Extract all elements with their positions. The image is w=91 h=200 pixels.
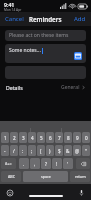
button[interactable]: #+= (1, 158, 16, 169)
staticText: space (41, 174, 51, 179)
button[interactable]: space (23, 171, 68, 182)
staticText: ( (40, 148, 42, 154)
staticText: $ (58, 148, 61, 154)
button[interactable]: Emoji keyboard (6, 189, 13, 196)
button[interactable]: Backspace (76, 158, 90, 169)
staticText: " (85, 148, 87, 154)
button[interactable]: ( (37, 145, 45, 156)
staticText: : (22, 148, 24, 154)
staticText: / (13, 148, 15, 154)
button[interactable]: 6 (46, 132, 54, 143)
staticText: Please act on these items (9, 32, 69, 39)
button[interactable]: : (19, 145, 27, 156)
staticText: ; (31, 148, 33, 154)
button[interactable]: & (64, 145, 72, 156)
button[interactable]: Details (5, 82, 86, 93)
button[interactable]: Add (69, 12, 91, 26)
staticText: Reminders (29, 15, 62, 23)
staticText: Cancel (5, 15, 24, 23)
staticText: ! (56, 161, 58, 167)
button[interactable]: 3 (19, 132, 27, 143)
staticText: Mon 14 Apr (4, 8, 22, 12)
staticText: 2 (13, 135, 16, 141)
staticText: ABC (8, 174, 15, 179)
button[interactable]: Please act on these items (5, 30, 86, 41)
button[interactable]: 8 (64, 132, 72, 143)
staticText: ) (49, 148, 51, 154)
staticText: 7 (58, 135, 61, 141)
staticText: 9 (76, 135, 79, 141)
button[interactable]: 5 (37, 132, 45, 143)
staticText: General (61, 84, 80, 91)
button[interactable]: " (82, 145, 90, 156)
staticText: 0 (85, 135, 88, 141)
staticText: 3 (22, 135, 25, 141)
button[interactable]: 2 (10, 132, 18, 143)
staticText: ' (67, 161, 69, 167)
button[interactable]: Voice input (78, 189, 85, 196)
staticText: 4 (31, 135, 34, 141)
button[interactable]: return (70, 171, 90, 182)
button[interactable]: ? (41, 158, 51, 169)
staticText: 9:41 (4, 1, 15, 8)
button[interactable]: 0 (82, 132, 90, 143)
button[interactable]: / (10, 145, 18, 156)
staticText: 6 (49, 135, 52, 141)
button[interactable]: ABC (1, 171, 21, 182)
button[interactable]: 9 (73, 132, 81, 143)
button[interactable]: Cancel (0, 12, 29, 26)
staticText: 1 (4, 135, 7, 141)
staticText: @ (75, 148, 80, 154)
button[interactable]: 1 (1, 132, 9, 143)
staticText: 5 (40, 135, 43, 141)
button[interactable]: 7 (55, 132, 63, 143)
button[interactable]: 4 (28, 132, 36, 143)
button[interactable]: - (1, 145, 9, 156)
staticText: #+= (5, 161, 12, 166)
other: Attached image (74, 52, 82, 60)
staticText: , (34, 161, 36, 167)
staticText: return (75, 174, 86, 179)
staticText: Details (6, 84, 23, 91)
staticText: 8 (67, 135, 70, 141)
staticText: - (4, 148, 6, 154)
button[interactable]: ' (63, 158, 73, 169)
button[interactable]: ; (28, 145, 36, 156)
staticText: Add (74, 15, 86, 23)
button[interactable]: @ (73, 145, 81, 156)
button[interactable]: ) (46, 145, 54, 156)
button[interactable]: Some notes... (5, 44, 86, 63)
staticText: . (23, 161, 25, 167)
staticText: Some notes... (9, 47, 41, 54)
staticText: ? (45, 161, 47, 167)
button[interactable]: $ (55, 145, 63, 156)
button[interactable]: ! (52, 158, 62, 169)
staticText: & (66, 148, 70, 154)
button[interactable]: , (30, 158, 40, 169)
button[interactable]: . (19, 158, 29, 169)
